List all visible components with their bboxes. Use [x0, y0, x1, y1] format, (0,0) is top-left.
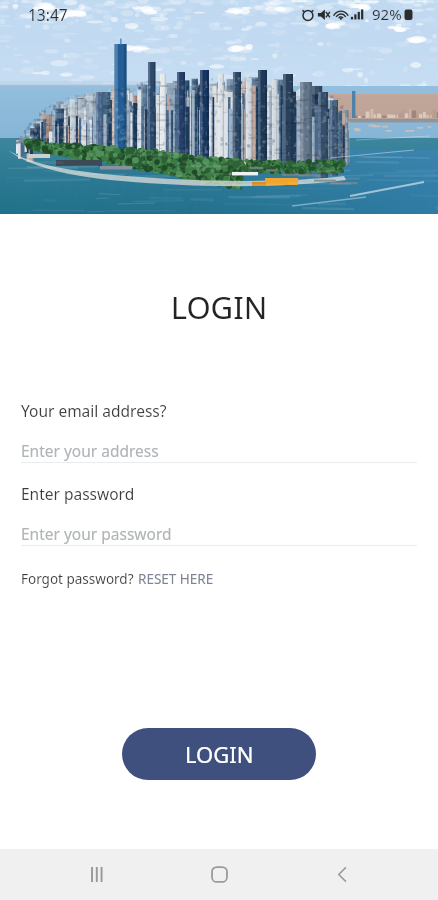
button[interactable]: LOGIN: [122, 728, 316, 780]
staticText: LOGIN: [185, 739, 254, 769]
button[interactable]: Back: [281, 849, 404, 900]
button[interactable]: Home: [158, 849, 281, 900]
staticText: 13:47: [28, 4, 68, 25]
staticText: Enter your address: [21, 440, 159, 461]
button[interactable]: Recent apps: [34, 849, 158, 900]
button[interactable]: RESET HERE: [138, 570, 214, 588]
staticText: LOGIN: [0, 286, 438, 328]
staticText: Enter password: [21, 483, 135, 504]
staticText: Forgot password?: [21, 570, 138, 588]
staticText: 92%: [372, 4, 402, 24]
staticText: Your email address?: [21, 400, 167, 421]
staticText: Enter your password: [21, 523, 172, 544]
